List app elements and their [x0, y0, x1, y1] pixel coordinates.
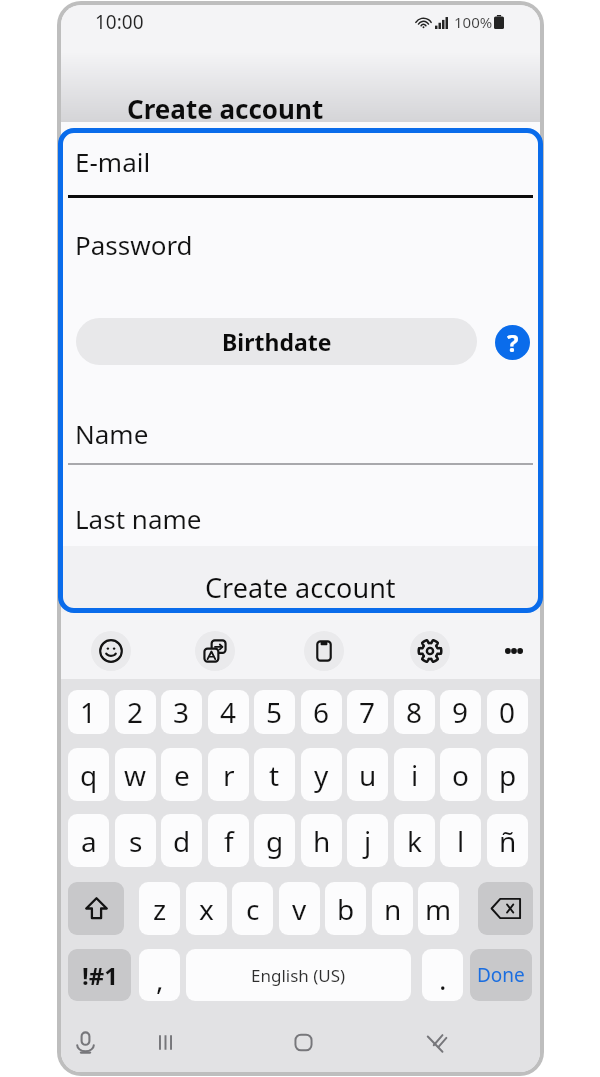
- button[interactable]: k: [394, 814, 435, 867]
- button[interactable]: 5: [254, 690, 295, 734]
- button[interactable]: 7: [347, 690, 388, 734]
- button[interactable]: m: [418, 882, 459, 935]
- button[interactable]: n: [372, 882, 413, 935]
- staticText: z: [153, 890, 167, 928]
- button[interactable]: 8: [394, 690, 435, 734]
- staticText: r: [223, 756, 235, 794]
- staticText: !#1: [82, 959, 118, 992]
- staticText: 6: [313, 693, 330, 731]
- staticText: 3: [173, 693, 190, 731]
- staticText: w: [124, 756, 147, 794]
- button[interactable]: Birthdate: [76, 318, 477, 365]
- button[interactable]: y: [301, 748, 342, 801]
- button[interactable]: ñ: [487, 814, 528, 867]
- button[interactable]: r: [208, 748, 249, 801]
- button[interactable]: Create account: [127, 91, 324, 126]
- staticText: c: [246, 890, 260, 928]
- button[interactable]: Hide keyboard: [418, 1024, 454, 1060]
- button[interactable]: ,: [139, 949, 180, 1001]
- button[interactable]: Home: [285, 1024, 321, 1060]
- button[interactable]: h: [301, 814, 342, 867]
- button[interactable]: 9: [440, 690, 481, 734]
- staticText: .: [439, 960, 447, 998]
- staticText: p: [499, 756, 517, 794]
- button[interactable]: Keyboard settings: [410, 631, 450, 671]
- staticText: b: [337, 890, 355, 928]
- button[interactable]: Backspace: [478, 882, 533, 935]
- button[interactable]: s: [115, 814, 156, 867]
- staticText: 5: [266, 693, 283, 731]
- staticText: q: [80, 756, 98, 794]
- button[interactable]: Clipboard: [304, 631, 344, 671]
- button[interactable]: e: [161, 748, 202, 801]
- button[interactable]: v: [279, 882, 320, 935]
- button[interactable]: i: [394, 748, 435, 801]
- button[interactable]: g: [254, 814, 295, 867]
- button[interactable]: b: [325, 882, 366, 935]
- button[interactable]: l: [440, 814, 481, 867]
- button[interactable]: !#1: [68, 949, 131, 1001]
- staticText: l: [457, 822, 465, 860]
- button[interactable]: z: [139, 882, 180, 935]
- staticText: Password: [75, 227, 193, 262]
- button[interactable]: Create account: [61, 546, 540, 612]
- button[interactable]: 6: [301, 690, 342, 734]
- button[interactable]: x: [186, 882, 227, 935]
- staticText: 4: [220, 693, 237, 731]
- button[interactable]: More options: [494, 631, 534, 671]
- staticText: i: [411, 756, 419, 794]
- staticText: Last name: [75, 501, 202, 536]
- staticText: a: [81, 822, 97, 860]
- staticText: m: [425, 890, 452, 928]
- button[interactable]: t: [254, 748, 295, 801]
- button[interactable]: o: [440, 748, 481, 801]
- button[interactable]: w: [115, 748, 156, 801]
- button[interactable]: .: [422, 949, 463, 1001]
- button[interactable]: Translate: [195, 631, 235, 671]
- staticText: 9: [452, 693, 469, 731]
- staticText: 7: [359, 693, 376, 731]
- staticText: 100%: [454, 12, 493, 32]
- button[interactable]: 3: [161, 690, 202, 734]
- button[interactable]: 1: [68, 690, 109, 734]
- staticText: x: [199, 890, 214, 928]
- staticText: t: [269, 756, 280, 794]
- button[interactable]: 4: [208, 690, 249, 734]
- button[interactable]: u: [347, 748, 388, 801]
- staticText: Name: [75, 416, 149, 451]
- button[interactable]: Help: [495, 325, 530, 360]
- staticText: 8: [406, 693, 423, 731]
- button[interactable]: Password: [61, 212, 540, 276]
- staticText: v: [292, 890, 307, 928]
- staticText: u: [359, 756, 377, 794]
- staticText: ,: [156, 960, 164, 998]
- staticText: 1: [80, 693, 97, 731]
- button[interactable]: f: [208, 814, 249, 867]
- staticText: ?: [507, 326, 519, 359]
- button[interactable]: Done: [470, 949, 532, 1001]
- button[interactable]: English (US): [186, 949, 411, 1001]
- staticText: g: [266, 822, 284, 860]
- button[interactable]: p: [487, 748, 528, 801]
- button[interactable]: Emoji: [91, 631, 131, 671]
- staticText: e: [174, 756, 190, 794]
- staticText: y: [314, 756, 329, 794]
- button[interactable]: q: [68, 748, 109, 801]
- staticText: E-mail: [75, 144, 151, 179]
- button[interactable]: c: [232, 882, 273, 935]
- button[interactable]: j: [347, 814, 388, 867]
- staticText: Done: [477, 962, 525, 988]
- button[interactable]: 2: [115, 690, 156, 734]
- button[interactable]: Recents: [147, 1024, 183, 1060]
- button[interactable]: Shift: [68, 882, 124, 935]
- button[interactable]: 0: [487, 690, 528, 734]
- button[interactable]: E-mail: [61, 126, 540, 196]
- button[interactable]: a: [68, 814, 109, 867]
- button[interactable]: d: [161, 814, 202, 867]
- button[interactable]: Last name: [61, 486, 540, 550]
- button[interactable]: Voice input: [67, 1024, 103, 1060]
- staticText: 2: [127, 693, 144, 731]
- staticText: Birthdate: [222, 326, 332, 357]
- staticText: o: [452, 756, 469, 794]
- button[interactable]: Name: [61, 401, 540, 465]
